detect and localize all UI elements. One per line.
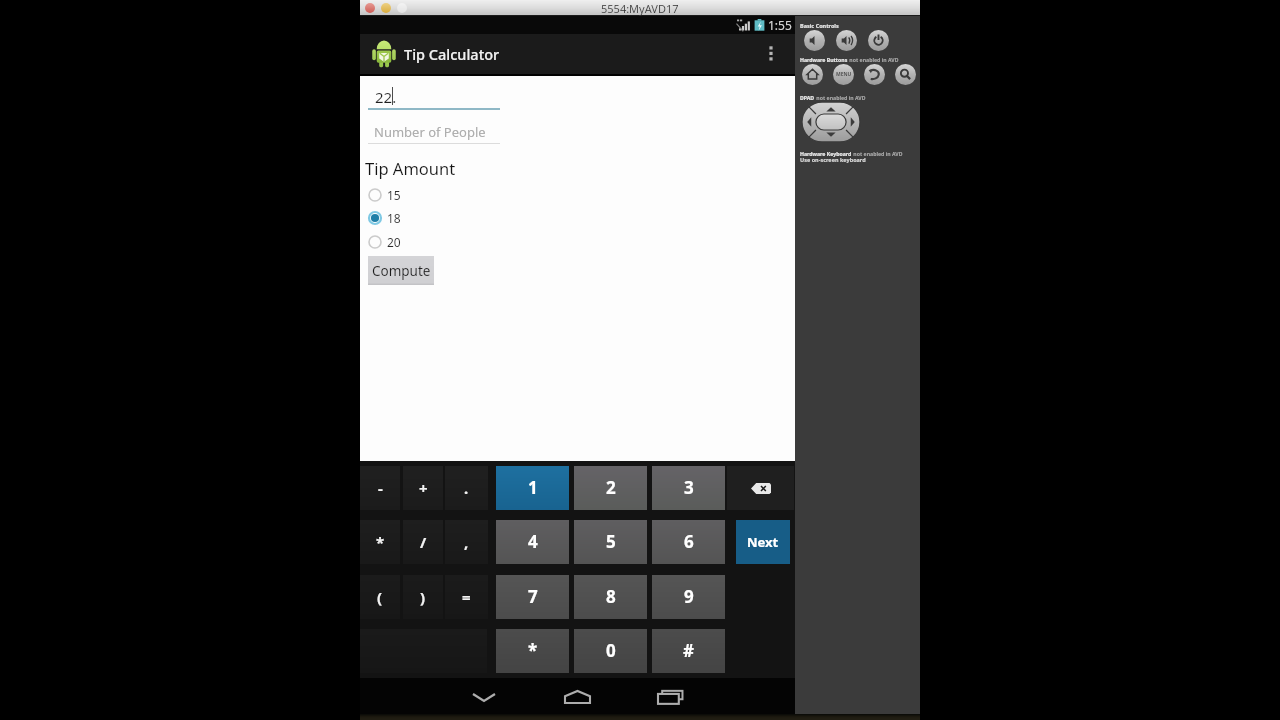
staticText: 5554:MyAVD17 <box>601 1 679 16</box>
button[interactable]: Back <box>864 64 885 85</box>
button[interactable]: ) <box>403 575 443 619</box>
staticText: 0 <box>606 639 616 662</box>
button[interactable]: Volume down <box>804 30 825 51</box>
button[interactable]: 7 <box>496 575 569 619</box>
button[interactable]: / <box>403 520 443 564</box>
button[interactable]: Home <box>802 64 823 85</box>
button[interactable]: Home <box>557 683 597 711</box>
button[interactable]: - <box>360 466 400 510</box>
button[interactable]: More options <box>760 38 782 70</box>
button[interactable]: 0 <box>574 629 647 673</box>
staticText: 2 <box>606 476 616 499</box>
button[interactable]: 6 <box>652 520 725 564</box>
staticText: DPAD <box>800 94 815 101</box>
button[interactable]: + <box>403 466 443 510</box>
button[interactable]: Volume up <box>836 30 857 51</box>
staticText: 18 <box>387 210 401 226</box>
staticText: ( <box>377 587 383 607</box>
staticText: not enabled in AVD <box>815 94 866 101</box>
staticText: Tip Amount <box>365 157 456 179</box>
button[interactable]: Next <box>736 520 790 564</box>
staticText: Use on-screen keyboard <box>800 156 866 163</box>
staticText: 3 <box>684 476 694 499</box>
staticText: = <box>462 587 471 607</box>
button[interactable]: 20 <box>368 232 401 252</box>
button[interactable]: 4 <box>496 520 569 564</box>
staticText: ) <box>420 587 426 607</box>
staticText: 8 <box>606 585 616 608</box>
staticText: # <box>683 639 694 662</box>
staticText: / <box>420 532 427 552</box>
staticText: 22. <box>375 87 397 107</box>
staticText: * <box>376 532 385 552</box>
button[interactable]: 18 <box>368 208 401 228</box>
staticText: 4 <box>528 530 538 553</box>
staticText: 7 <box>528 585 538 608</box>
button[interactable]: , <box>445 520 488 564</box>
button[interactable]: Recent apps <box>650 683 690 711</box>
staticText: not enabled in AVD <box>852 150 903 157</box>
staticText: 6 <box>684 530 694 553</box>
button[interactable]: 2 <box>574 466 647 510</box>
staticText: Next <box>747 533 779 551</box>
staticText: . <box>464 478 469 498</box>
button[interactable]: 15 <box>368 185 401 205</box>
button[interactable]: 1 <box>496 466 569 510</box>
staticText: - <box>378 478 383 498</box>
button[interactable]: = <box>445 575 488 619</box>
staticText: MENU <box>836 71 852 78</box>
button[interactable]: . <box>445 466 488 510</box>
button[interactable]: Menu <box>833 64 854 85</box>
button[interactable]: Hide keyboard <box>464 683 504 711</box>
staticText: 9 <box>684 585 694 608</box>
button[interactable]: 3 <box>652 466 725 510</box>
staticText: 1 <box>528 476 538 499</box>
staticText: Compute <box>372 262 431 280</box>
staticText: , <box>464 532 469 552</box>
button[interactable]: # <box>652 629 725 673</box>
staticText: Tip Calculator <box>404 44 500 64</box>
button[interactable]: ( <box>360 575 400 619</box>
button[interactable]: Backspace <box>727 466 794 510</box>
button[interactable]: 5 <box>574 520 647 564</box>
staticText: Hardware Buttons <box>800 56 848 63</box>
button[interactable]: Power <box>868 30 889 51</box>
staticText: 20 <box>387 234 401 250</box>
staticText: 1:55 <box>768 17 792 33</box>
button[interactable]: * <box>360 520 400 564</box>
staticText: + <box>419 478 428 498</box>
button[interactable]: Compute <box>368 256 434 285</box>
staticText: Number of People <box>374 123 486 141</box>
staticText: 15 <box>387 187 401 203</box>
button[interactable]: 9 <box>652 575 725 619</box>
button[interactable]: D-pad <box>802 102 860 142</box>
staticText: * <box>528 639 538 662</box>
staticText: 5 <box>606 530 616 553</box>
button[interactable]: 8 <box>574 575 647 619</box>
button[interactable]: * <box>496 629 569 673</box>
staticText: Basic Controls <box>800 22 839 29</box>
button[interactable]: Search <box>895 64 916 85</box>
staticText: Hardware Keyboard <box>800 150 852 157</box>
staticText: not enabled in AVD <box>848 56 899 63</box>
